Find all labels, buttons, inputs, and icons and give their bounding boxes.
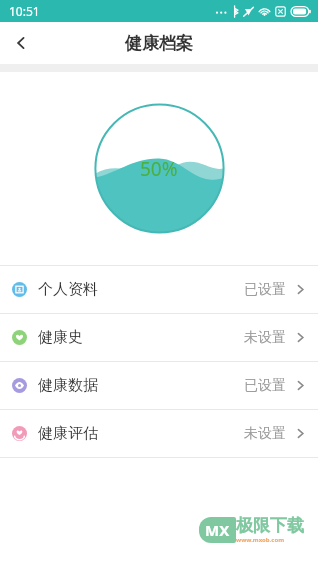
button[interactable]: 健康史 — [0, 314, 318, 361]
staticText: 50% — [140, 156, 178, 182]
button[interactable]: Back — [0, 22, 42, 64]
staticText: 极限下载 — [236, 515, 304, 536]
staticText: MX — [205, 520, 230, 540]
staticText: 未设置 — [244, 425, 286, 443]
button[interactable]: 健康评估 — [0, 410, 318, 457]
button[interactable]: 个人资料 — [0, 266, 318, 313]
staticText: 健康评估 — [38, 424, 98, 443]
staticText: 未设置 — [244, 329, 286, 347]
staticText: 健康数据 — [38, 376, 98, 395]
staticText: www.mxob.com — [236, 536, 284, 544]
staticText: 已设置 — [244, 281, 286, 299]
button[interactable]: 健康数据 — [0, 362, 318, 409]
staticText: 健康史 — [38, 328, 83, 347]
staticText: 健康档案 — [125, 33, 193, 54]
staticText: 已设置 — [244, 377, 286, 395]
staticText: 个人资料 — [38, 280, 98, 299]
staticText: 10:51 — [9, 3, 40, 19]
